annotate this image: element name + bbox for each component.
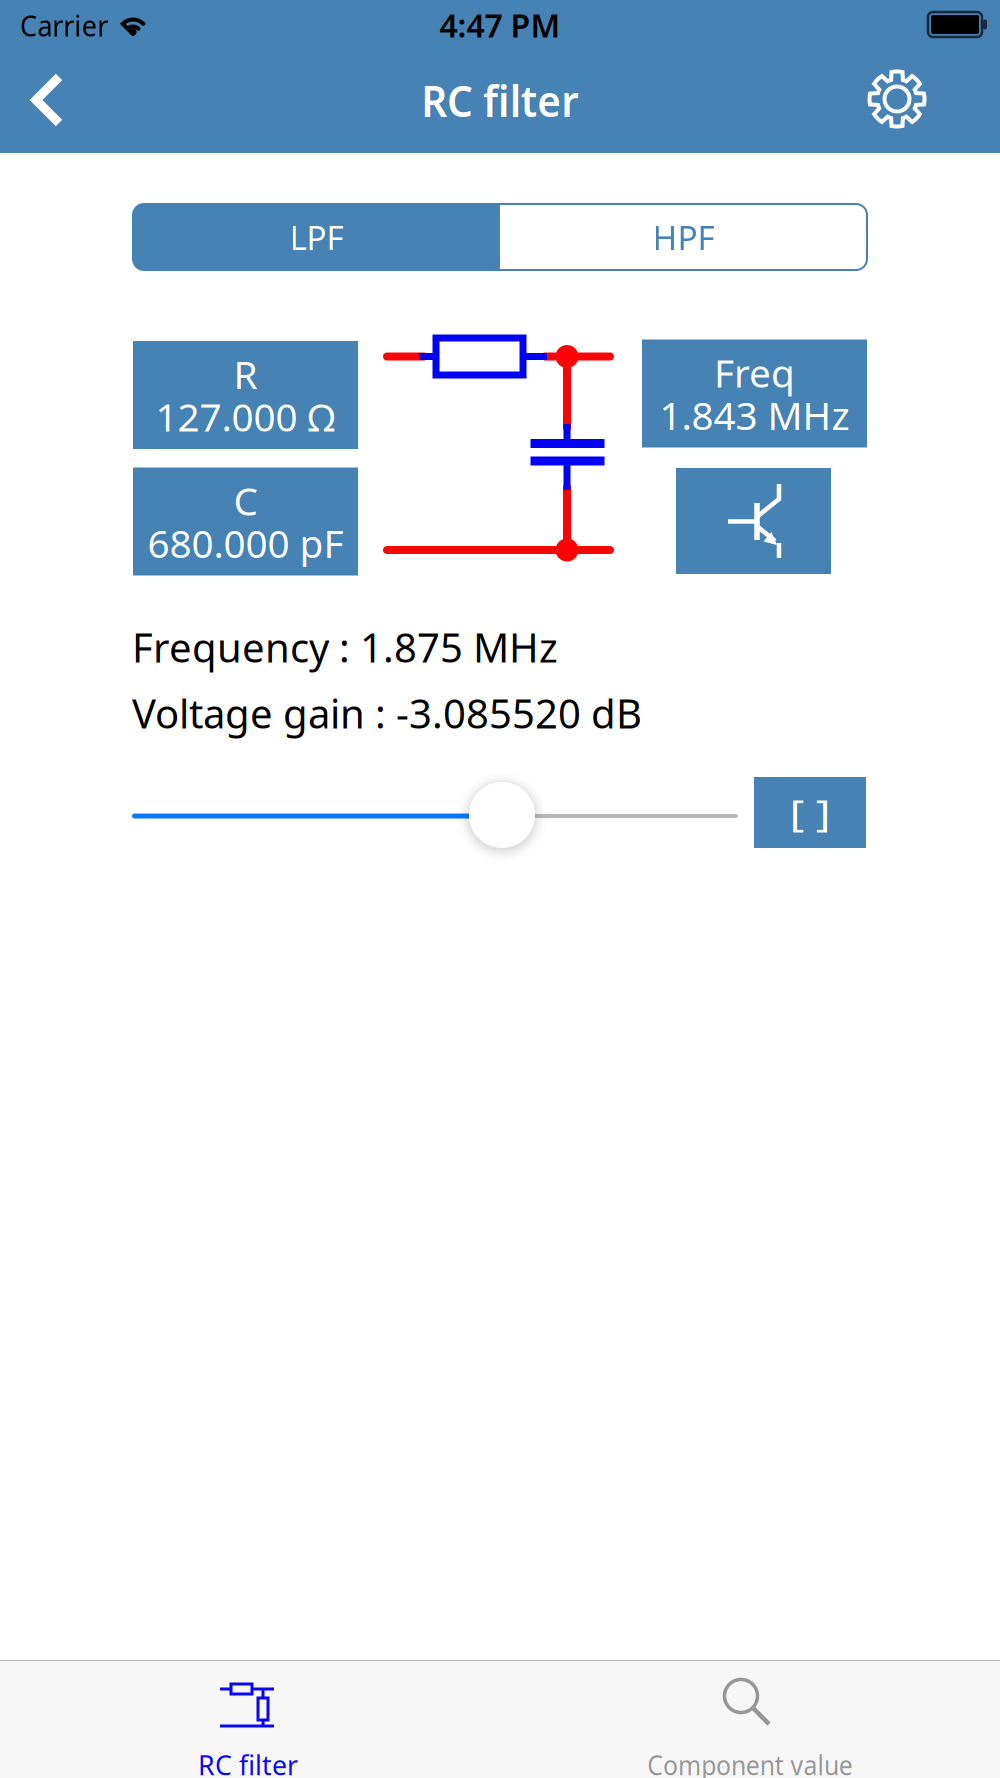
staticText: Freq [714,347,795,398]
button[interactable]: Frequency slider [469,782,535,848]
staticText: RC filter [198,1747,298,1778]
button[interactable]: Component value [550,1661,950,1778]
staticText: Frequency : 1.875 MHz [132,620,558,673]
staticText: R [233,348,257,400]
button[interactable]: HPF [500,204,867,270]
staticText: 1.843 MHz [659,389,849,441]
staticText: 127.000 Ω [155,391,335,442]
button[interactable]: C [133,467,358,575]
staticText: 4:47 PM [439,4,560,46]
staticText: Carrier [20,5,116,44]
staticText: 680.000 pF [147,517,343,569]
staticText: Component value [639,1747,860,1778]
button[interactable]: Brackets [754,777,866,848]
button[interactable]: Back [13,60,83,140]
button[interactable]: Freq [642,339,867,447]
button[interactable]: R [133,341,358,449]
staticText: [ ] [793,789,826,836]
button[interactable]: Settings [859,61,935,137]
button[interactable]: LPF [133,204,500,270]
staticText: LPF [289,215,343,259]
staticText: C [233,475,257,526]
staticText: RC filter [414,71,585,129]
button[interactable]: Transistor [676,468,831,574]
button[interactable]: RC filter [98,1661,398,1778]
staticText: HPF [652,215,714,259]
staticText: Voltage gain : -3.085520 dB [132,686,642,739]
